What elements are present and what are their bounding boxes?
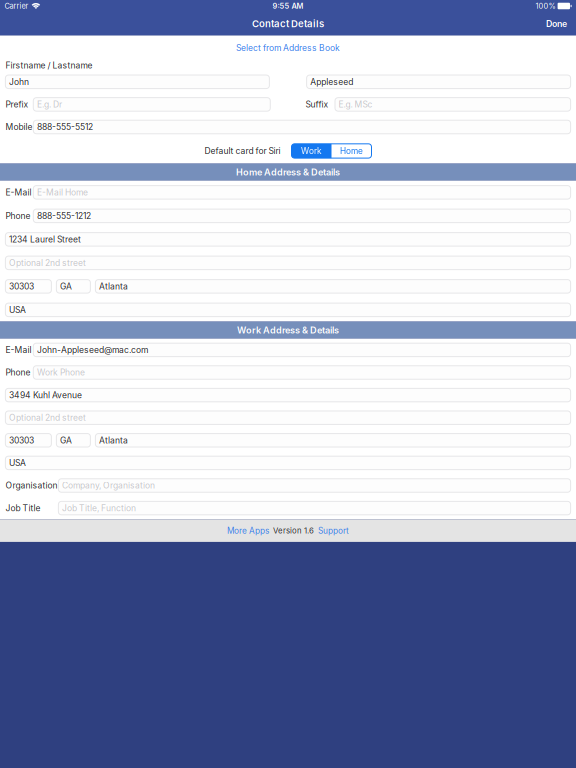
staticText: GA xyxy=(60,281,72,291)
staticText: Optional 2nd street xyxy=(9,412,86,423)
staticText: Select from Address Book xyxy=(236,43,340,53)
staticText: Version 1.6 xyxy=(273,526,314,535)
staticText: Carrier xyxy=(4,1,28,10)
staticText: Work Phone xyxy=(37,367,85,378)
staticText: Atlanta xyxy=(99,435,128,445)
staticText: John xyxy=(9,77,29,87)
button[interactable]: Home xyxy=(331,144,371,158)
staticText: Work xyxy=(301,146,322,156)
staticText: 100% xyxy=(536,1,556,10)
staticText: E-Mail xyxy=(5,187,31,197)
staticText: Suffix xyxy=(306,99,329,109)
staticText: 30303 xyxy=(9,435,34,445)
staticText: Support xyxy=(318,526,349,536)
button[interactable]: Done xyxy=(546,12,576,35)
button[interactable]: More Apps xyxy=(227,526,269,536)
staticText: GA xyxy=(60,435,72,445)
staticText: 30303 xyxy=(9,281,34,291)
staticText: USA xyxy=(9,458,26,468)
staticText: Atlanta xyxy=(99,281,128,291)
button[interactable]: Work xyxy=(291,144,331,158)
staticText: E.g. Dr xyxy=(37,99,62,109)
staticText: Company, Organisation xyxy=(62,480,155,491)
button[interactable]: Support xyxy=(318,526,349,536)
staticText: USA xyxy=(9,305,26,315)
staticText: Job Title, Function xyxy=(62,503,136,513)
button[interactable]: Select from Address Book xyxy=(0,35,576,60)
staticText: Phone xyxy=(5,367,30,378)
staticText: 888-555-5512 xyxy=(37,122,93,132)
staticText: Work Address & Details xyxy=(237,325,339,336)
staticText: 1234 Laurel Street xyxy=(9,234,81,244)
staticText: More Apps xyxy=(227,526,269,536)
staticText: Optional 2nd street xyxy=(9,258,86,268)
staticText: Contact Details xyxy=(252,18,324,29)
staticText: Appleseed xyxy=(310,77,353,87)
staticText: 888-555-1212 xyxy=(37,211,91,221)
staticText: Mobile xyxy=(5,122,32,132)
staticText: Default card for Siri xyxy=(204,146,280,156)
staticText: 3494 Kuhl Avenue xyxy=(9,390,82,400)
staticText: Home xyxy=(340,146,363,156)
staticText: E-Mail Home xyxy=(37,187,88,197)
staticText: E-Mail xyxy=(5,345,31,355)
staticText: Phone xyxy=(5,211,30,221)
staticText: 9:55 AM xyxy=(272,1,303,10)
staticText: Prefix xyxy=(5,99,28,109)
staticText: Firstname / Lastname xyxy=(5,60,92,71)
staticText: John-Appleseed@mac.com xyxy=(37,345,148,355)
staticText: Done xyxy=(546,18,567,29)
staticText: E.g. MSc xyxy=(339,99,373,109)
staticText: Job Title xyxy=(5,503,40,513)
staticText: Home Address & Details xyxy=(236,167,340,178)
staticText: Organisation xyxy=(5,480,57,491)
